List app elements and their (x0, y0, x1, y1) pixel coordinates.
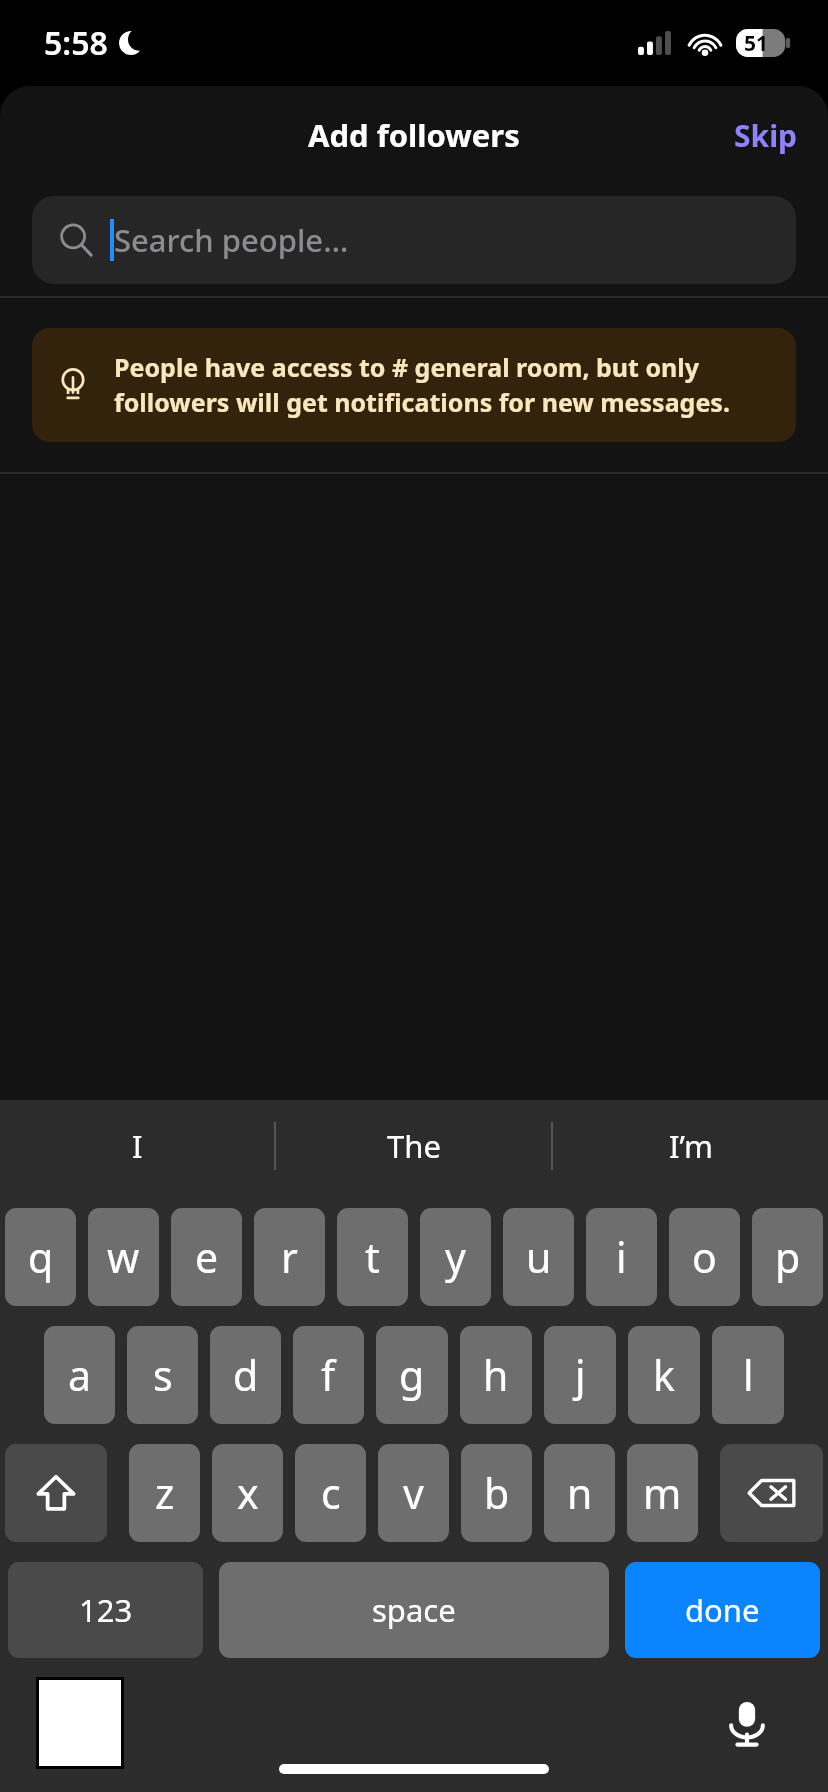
button[interactable]: l (712, 1326, 784, 1424)
button[interactable]: s (127, 1326, 198, 1424)
staticText: d (233, 1347, 259, 1403)
button[interactable]: I’m (553, 1100, 828, 1192)
button[interactable]: j (544, 1326, 616, 1424)
staticText: q (28, 1229, 54, 1285)
staticText: Skip (734, 115, 798, 156)
button[interactable]: x (212, 1444, 283, 1542)
staticText: l (743, 1347, 754, 1403)
staticText: y (445, 1229, 466, 1285)
staticText: u (526, 1229, 552, 1285)
button[interactable]: I (0, 1100, 274, 1192)
button[interactable]: z (129, 1444, 200, 1542)
staticText: done (685, 1589, 760, 1631)
staticText: e (195, 1229, 219, 1285)
staticText: Search people… (114, 219, 349, 261)
button[interactable]: k (628, 1326, 700, 1424)
button[interactable]: Backspace (720, 1444, 823, 1542)
staticText: a (68, 1347, 92, 1403)
staticText: space (372, 1589, 456, 1631)
button[interactable]: The (276, 1100, 551, 1192)
staticText: p (775, 1229, 801, 1285)
button[interactable]: People have access to # general room, bu… (32, 328, 796, 442)
button[interactable]: b (461, 1444, 532, 1542)
staticText: t (365, 1229, 380, 1285)
button[interactable]: d (210, 1326, 281, 1424)
staticText: I’m (669, 1125, 713, 1167)
button[interactable]: u (503, 1208, 574, 1306)
staticText: I (132, 1125, 143, 1167)
button[interactable]: p (752, 1208, 823, 1306)
button[interactable]: h (460, 1326, 532, 1424)
button[interactable]: e (171, 1208, 242, 1306)
button[interactable]: c (295, 1444, 366, 1542)
staticText: o (692, 1229, 717, 1285)
button[interactable]: a (44, 1326, 115, 1424)
staticText: w (107, 1229, 140, 1285)
staticText: The (387, 1125, 441, 1167)
staticText: 5:58 (44, 21, 108, 65)
button[interactable]: r (254, 1208, 325, 1306)
button[interactable]: Search people… (32, 196, 796, 284)
staticText: r (281, 1229, 298, 1285)
staticText: c (321, 1465, 341, 1521)
button[interactable]: space (219, 1562, 609, 1658)
staticText: j (575, 1347, 586, 1403)
staticText: h (483, 1347, 509, 1403)
staticText: f (321, 1347, 336, 1403)
button[interactable]: y (420, 1208, 491, 1306)
button[interactable]: Skip (704, 99, 828, 172)
staticText: Add followers (308, 114, 520, 156)
button[interactable]: t (337, 1208, 408, 1306)
staticText: z (155, 1465, 175, 1521)
button[interactable]: Emoji (36, 1677, 124, 1769)
button[interactable]: Dictate (712, 1688, 782, 1758)
button[interactable]: o (669, 1208, 740, 1306)
staticText: m (643, 1465, 682, 1521)
button[interactable]: v (378, 1444, 449, 1542)
button[interactable]: i (586, 1208, 657, 1306)
staticText: i (616, 1229, 627, 1285)
button[interactable]: q (5, 1208, 76, 1306)
staticText: s (153, 1347, 173, 1403)
button[interactable]: Shift (5, 1444, 107, 1542)
staticText: g (399, 1347, 425, 1403)
staticText: 51 (744, 29, 769, 57)
staticText: People have access to # general room, bu… (114, 350, 772, 420)
button[interactable]: m (627, 1444, 698, 1542)
button[interactable]: g (376, 1326, 448, 1424)
staticText: v (403, 1465, 424, 1521)
button[interactable]: done (625, 1562, 820, 1658)
button[interactable]: w (88, 1208, 159, 1306)
staticText: b (484, 1465, 510, 1521)
staticText: k (653, 1347, 675, 1403)
staticText: 123 (79, 1589, 133, 1631)
staticText: n (567, 1465, 593, 1521)
button[interactable]: 123 (8, 1562, 203, 1658)
staticText: x (237, 1465, 259, 1521)
button[interactable]: f (293, 1326, 364, 1424)
button[interactable]: n (544, 1444, 615, 1542)
